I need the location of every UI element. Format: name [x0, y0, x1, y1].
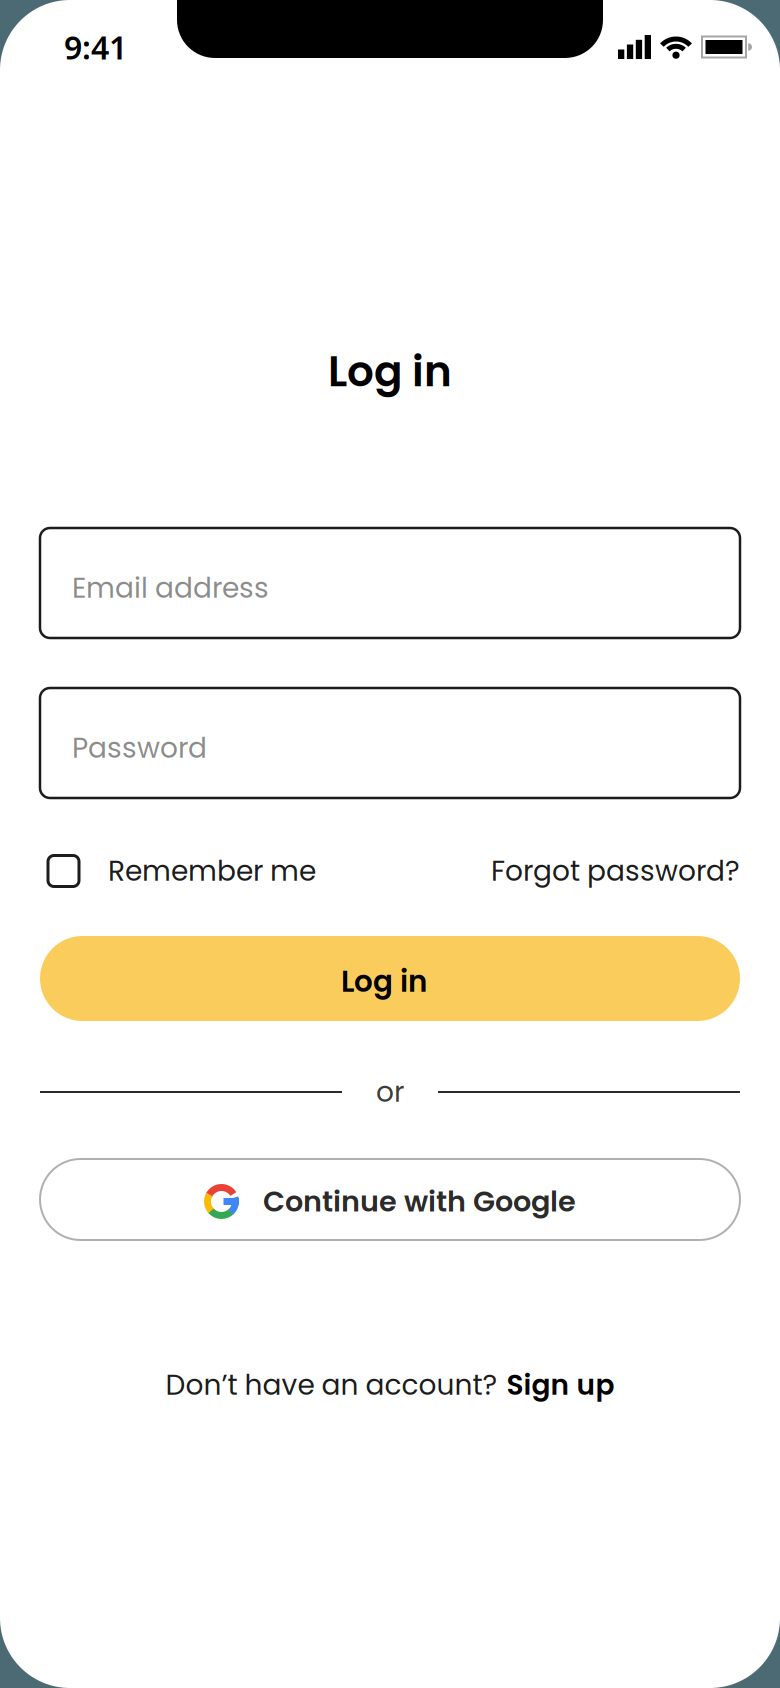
staticText: Sign up — [506, 1365, 614, 1405]
staticText: Remember me — [108, 851, 316, 891]
staticText: Continue with Google — [263, 1181, 576, 1221]
staticText: Forgot password? — [491, 851, 740, 891]
button[interactable]: Continue with Google — [40, 1159, 740, 1240]
button[interactable]: Forgot password? — [491, 851, 740, 891]
staticText: 9:41 — [64, 26, 127, 68]
staticText: Don’t have an account? — [165, 1365, 497, 1405]
button[interactable]: Sign up — [506, 1365, 614, 1405]
staticText: Log in — [328, 342, 452, 401]
staticText: Log in — [341, 961, 427, 1002]
staticText: or — [376, 1072, 404, 1112]
button[interactable]: Log in — [40, 936, 740, 1021]
staticText: Email address — [72, 568, 269, 608]
staticText: Password — [72, 728, 207, 768]
button[interactable]: Remember me — [40, 851, 316, 891]
